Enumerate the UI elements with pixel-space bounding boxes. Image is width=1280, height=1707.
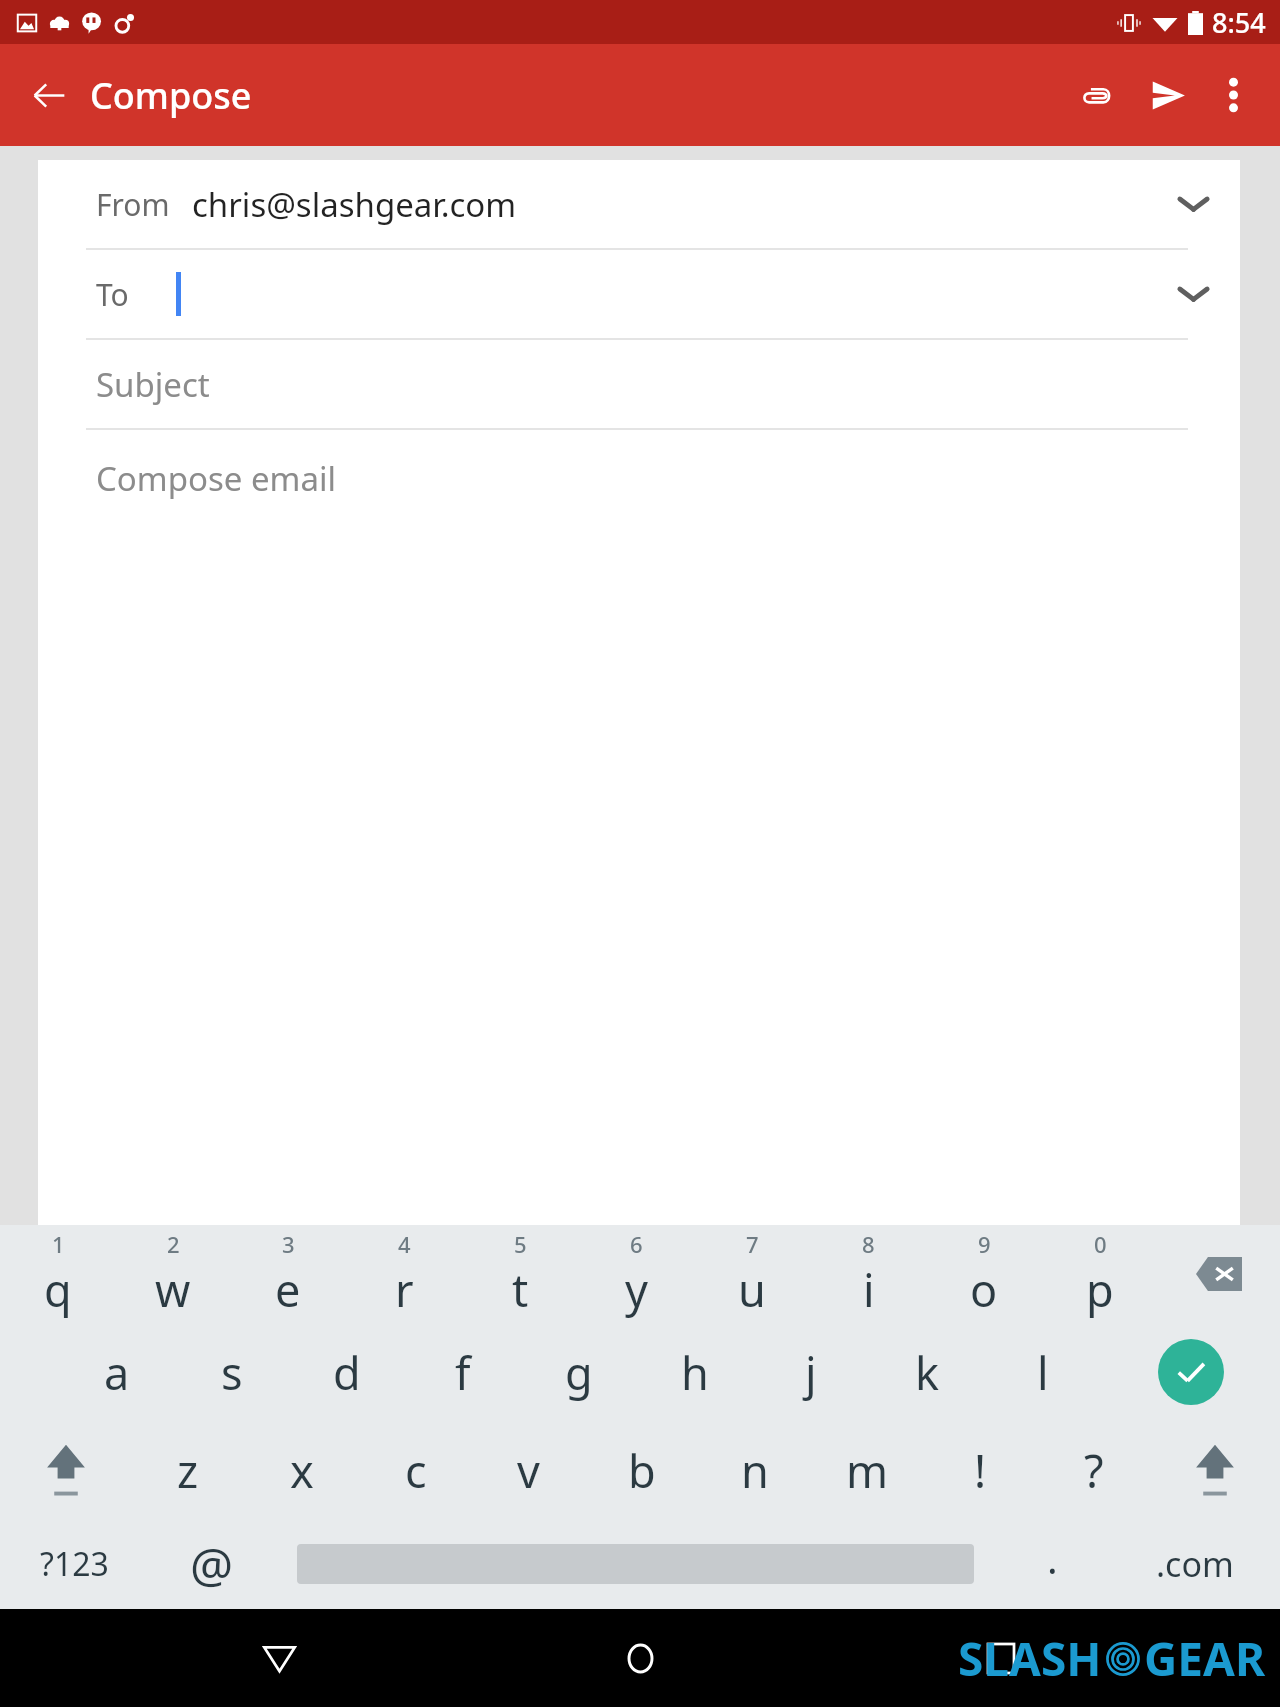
button[interactable]: 5 bbox=[462, 1225, 578, 1323]
staticText: 4 bbox=[398, 1229, 411, 1259]
staticText: j bbox=[805, 1342, 817, 1403]
staticText: To bbox=[96, 274, 176, 315]
staticText: 8:54 bbox=[1212, 4, 1266, 41]
button[interactable]: 2 bbox=[115, 1225, 230, 1323]
button[interactable]: k bbox=[869, 1323, 985, 1421]
button[interactable]: n bbox=[698, 1421, 811, 1519]
staticText: ? bbox=[1084, 1440, 1104, 1501]
button[interactable]: 8 bbox=[810, 1225, 926, 1323]
staticText: n bbox=[741, 1440, 769, 1501]
staticText: 7 bbox=[746, 1229, 759, 1259]
button[interactable]: Expand bbox=[1158, 169, 1228, 239]
button[interactable]: z bbox=[131, 1421, 245, 1519]
button[interactable]: Send bbox=[1136, 63, 1200, 127]
staticText: e bbox=[275, 1259, 301, 1320]
staticText: 5 bbox=[514, 1229, 527, 1259]
button[interactable]: To bbox=[38, 250, 1240, 338]
staticText: a bbox=[104, 1342, 130, 1403]
staticText: s bbox=[221, 1342, 243, 1403]
staticText: GEAR bbox=[1144, 1627, 1266, 1690]
staticText: SLASH bbox=[958, 1627, 1102, 1690]
staticText: z bbox=[177, 1440, 199, 1501]
staticText: @ bbox=[190, 1532, 234, 1597]
button[interactable]: l bbox=[985, 1323, 1101, 1421]
staticText: Compose bbox=[90, 71, 252, 120]
button[interactable]: g bbox=[521, 1323, 637, 1421]
staticText: i bbox=[863, 1259, 875, 1320]
staticText: o bbox=[970, 1259, 998, 1320]
button[interactable]: Space bbox=[275, 1519, 995, 1609]
staticText: ! bbox=[974, 1440, 987, 1501]
staticText: 3 bbox=[282, 1229, 295, 1259]
staticText: 8 bbox=[862, 1229, 875, 1259]
button[interactable]: Enter bbox=[1101, 1323, 1280, 1421]
staticText: 9 bbox=[978, 1229, 991, 1259]
button[interactable]: 0 bbox=[1042, 1225, 1158, 1323]
button[interactable]: 7 bbox=[694, 1225, 810, 1323]
button[interactable]: .com bbox=[1109, 1519, 1280, 1609]
button[interactable]: ! bbox=[924, 1421, 1037, 1519]
staticText: .com bbox=[1156, 1541, 1234, 1587]
button[interactable]: @ bbox=[149, 1519, 275, 1609]
staticText: p bbox=[1086, 1259, 1114, 1320]
staticText: f bbox=[455, 1342, 471, 1403]
button[interactable]: f bbox=[405, 1323, 521, 1421]
button[interactable]: Compose email bbox=[38, 430, 1240, 1225]
button[interactable]: 3 bbox=[230, 1225, 346, 1323]
staticText: w bbox=[155, 1259, 191, 1320]
button[interactable]: Back bbox=[239, 1618, 319, 1698]
staticText: u bbox=[738, 1259, 766, 1320]
staticText: d bbox=[333, 1342, 361, 1403]
button[interactable]: a bbox=[59, 1323, 174, 1421]
button[interactable]: Attach file bbox=[1064, 63, 1128, 127]
button[interactable]: Backspace bbox=[1158, 1225, 1280, 1323]
button[interactable]: Shift bbox=[1150, 1421, 1280, 1519]
button[interactable]: 1 bbox=[0, 1225, 115, 1323]
button[interactable]: j bbox=[753, 1323, 869, 1421]
staticText: 6 bbox=[630, 1229, 643, 1259]
staticText: x bbox=[290, 1440, 314, 1501]
button[interactable]: From bbox=[38, 160, 1240, 248]
staticText: ?123 bbox=[40, 1542, 109, 1586]
button[interactable]: More options bbox=[1204, 66, 1262, 124]
staticText: t bbox=[512, 1259, 529, 1320]
button[interactable]: Recent apps bbox=[961, 1618, 1041, 1698]
staticText: y bbox=[625, 1259, 648, 1320]
button[interactable]: ?123 bbox=[0, 1519, 149, 1609]
staticText: c bbox=[405, 1440, 427, 1501]
button[interactable]: Subject bbox=[38, 340, 1240, 428]
button[interactable]: 4 bbox=[346, 1225, 462, 1323]
staticText: b bbox=[628, 1440, 656, 1501]
staticText: v bbox=[517, 1440, 540, 1501]
staticText: r bbox=[395, 1259, 414, 1320]
button[interactable]: Expand bbox=[1158, 259, 1228, 329]
button[interactable]: 6 bbox=[578, 1225, 694, 1323]
staticText: 0 bbox=[1094, 1229, 1107, 1259]
staticText: . bbox=[1047, 1531, 1058, 1585]
staticText: m bbox=[846, 1440, 889, 1501]
button[interactable]: h bbox=[637, 1323, 753, 1421]
button[interactable]: d bbox=[289, 1323, 405, 1421]
button[interactable]: ? bbox=[1037, 1421, 1150, 1519]
button[interactable]: . bbox=[995, 1519, 1109, 1609]
button[interactable]: Shift bbox=[0, 1421, 131, 1519]
staticText: 2 bbox=[167, 1229, 180, 1259]
button[interactable]: c bbox=[359, 1421, 472, 1519]
button[interactable]: Home bbox=[600, 1618, 680, 1698]
staticText: g bbox=[565, 1342, 593, 1403]
button[interactable]: 9 bbox=[926, 1225, 1042, 1323]
staticText: h bbox=[681, 1342, 709, 1403]
button[interactable]: Back bbox=[20, 66, 78, 124]
staticText: From bbox=[96, 184, 192, 225]
button[interactable]: m bbox=[811, 1421, 924, 1519]
button[interactable]: v bbox=[472, 1421, 585, 1519]
button[interactable]: s bbox=[174, 1323, 289, 1421]
staticText: Compose email bbox=[96, 456, 336, 501]
staticText: chris@slashgear.com bbox=[192, 182, 517, 227]
button[interactable]: x bbox=[245, 1421, 359, 1519]
staticText: k bbox=[915, 1342, 940, 1403]
staticText: 1 bbox=[52, 1229, 65, 1259]
button[interactable]: b bbox=[585, 1421, 698, 1519]
staticText: l bbox=[1037, 1342, 1049, 1403]
staticText: Subject bbox=[96, 362, 210, 407]
